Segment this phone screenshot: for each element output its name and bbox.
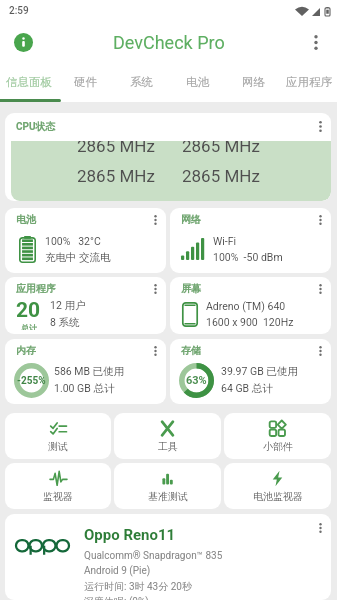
button[interactable]: 应用程序	[5, 277, 166, 334]
staticText: 电池	[16, 213, 36, 226]
staticText: 网络	[242, 75, 265, 89]
staticText: 硬件	[74, 75, 97, 89]
button[interactable]: 系统	[113, 62, 169, 102]
staticText: 小部件	[263, 440, 293, 453]
staticText: 系统	[130, 75, 153, 89]
button[interactable]: 网络	[170, 208, 331, 273]
staticText: 2865 MHz	[182, 166, 260, 186]
staticText: 电池监视器	[253, 490, 303, 503]
staticText: 8 系统	[50, 316, 80, 329]
staticText: 586 MB 已使用	[54, 365, 125, 378]
button[interactable]: 内存	[5, 339, 166, 404]
staticText: 12 用户	[50, 299, 86, 312]
button[interactable]: 工具	[114, 413, 221, 459]
button[interactable]: More options	[300, 26, 332, 58]
button[interactable]: 应用程序	[281, 62, 337, 102]
staticText: DevCheck Pro	[113, 32, 225, 53]
button[interactable]: 信息面板	[0, 62, 57, 102]
staticText: 2865 MHz	[182, 141, 260, 156]
staticText: 工具	[158, 440, 178, 453]
button[interactable]: 电池	[5, 208, 166, 273]
button[interactable]: 硬件	[57, 62, 113, 102]
staticText: 39.97 GB 已使用	[221, 365, 298, 378]
button[interactable]: 电池监视器	[224, 463, 331, 509]
button[interactable]: App info	[7, 26, 39, 58]
button[interactable]: 测试	[5, 413, 111, 459]
button[interactable]: 电池	[169, 62, 225, 102]
button[interactable]: Oppo Reno11	[5, 514, 331, 600]
staticText: 总计	[21, 323, 37, 330]
button[interactable]: CPU状态	[5, 113, 331, 201]
staticText: 充电中 交流电	[45, 251, 111, 264]
staticText: 电池	[186, 75, 209, 89]
staticText: 深度休眠: (0%)	[84, 595, 149, 600]
staticText: Adreno (TM) 640	[206, 300, 286, 312]
staticText: 2865 MHz	[77, 166, 182, 186]
staticText: 监视器	[43, 490, 73, 503]
staticText: 屏幕	[181, 282, 201, 295]
button[interactable]: 存储	[170, 339, 331, 404]
staticText: 应用程序	[286, 75, 332, 89]
staticText: 1.00 GB 总计	[54, 382, 115, 395]
staticText: 应用程序	[16, 282, 56, 295]
staticText: 存储	[181, 344, 201, 357]
staticText: 1600 x 900 120Hz	[206, 316, 294, 328]
staticText: 信息面板	[6, 75, 52, 89]
staticText: 64 GB 总计	[221, 382, 273, 395]
staticText: 内存	[16, 344, 36, 357]
button[interactable]: 小部件	[224, 413, 331, 459]
staticText: 100% -50 dBm	[213, 251, 283, 263]
staticText: 运行时间: 3时 43分 20秒	[84, 580, 192, 593]
staticText: 100% 32°C	[45, 235, 101, 247]
staticText: 2:59	[9, 5, 29, 17]
staticText: Qualcomm® Snapdragon™ 835	[84, 550, 223, 562]
staticText: 20	[16, 298, 41, 323]
button[interactable]: 网络	[225, 62, 281, 102]
staticText: Android 9 (Pie)	[84, 565, 151, 577]
staticText: 基准测试	[148, 490, 188, 503]
button[interactable]: 屏幕	[170, 277, 331, 334]
staticText: -255%	[17, 375, 46, 387]
staticText: CPU状态	[16, 120, 56, 133]
staticText: 测试	[48, 440, 68, 453]
button[interactable]: 基准测试	[114, 463, 221, 509]
staticText: Wi-Fi	[213, 235, 237, 247]
staticText: Oppo Reno11	[84, 526, 176, 544]
staticText: 网络	[181, 213, 201, 226]
staticText: 63%	[186, 374, 207, 387]
button[interactable]: 监视器	[5, 463, 111, 509]
staticText: 2865 MHz	[77, 141, 182, 156]
